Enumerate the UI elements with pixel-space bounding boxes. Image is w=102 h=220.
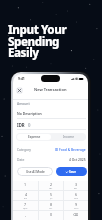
staticText: New Transaction	[34, 87, 67, 92]
staticText: 4 Oct 2025	[69, 157, 86, 161]
button[interactable]: Date	[17, 156, 86, 162]
staticText: 9	[75, 202, 78, 207]
staticText: 4	[25, 192, 28, 197]
button[interactable]: ⌫	[64, 211, 88, 220]
staticText: Income	[63, 135, 74, 139]
button[interactable]: 1	[13, 181, 38, 190]
staticText: Save	[69, 170, 77, 174]
staticText: Date	[17, 157, 25, 161]
button[interactable]: 7	[13, 201, 38, 210]
staticText: 9:41	[18, 76, 25, 81]
staticText: TUV	[49, 207, 53, 209]
staticText: Food & Beverage	[59, 147, 86, 151]
button[interactable]: 2	[39, 181, 63, 190]
staticText: 2	[50, 182, 53, 187]
staticText: DEF	[74, 187, 78, 189]
staticText: Category	[17, 147, 32, 151]
staticText: 7	[24, 202, 27, 207]
staticText: 5	[50, 192, 53, 197]
staticText: MNO	[74, 197, 79, 199]
staticText: ,	[25, 212, 26, 217]
button[interactable]: 5	[39, 191, 63, 200]
button[interactable]: Close	[16, 87, 23, 94]
staticText: Input Your Spending Easily	[8, 22, 67, 60]
button[interactable]: Save	[56, 167, 87, 176]
button[interactable]: 8	[39, 201, 63, 210]
staticText: ⌫	[73, 213, 79, 217]
button[interactable]: 9	[64, 201, 88, 210]
button[interactable]: Income	[51, 134, 85, 140]
staticText: Use AI Mode	[26, 170, 45, 174]
staticText: PQRS	[23, 207, 28, 209]
staticText: 0	[50, 212, 53, 217]
staticText: 1	[24, 182, 27, 187]
staticText: 8	[50, 202, 53, 207]
staticText: 6	[75, 192, 78, 197]
staticText: WXYZ	[74, 207, 79, 209]
staticText: Expense	[28, 135, 41, 139]
button[interactable]: 3	[64, 181, 88, 190]
staticText: ABC	[49, 187, 53, 189]
button[interactable]: Expense	[17, 134, 51, 140]
staticText: No Description	[17, 111, 42, 116]
button[interactable]: Category	[17, 146, 86, 152]
staticText: JKL	[50, 197, 53, 199]
staticText: 3	[75, 182, 78, 187]
staticText: 0	[28, 122, 31, 128]
button[interactable]: Use AI Mode	[17, 167, 53, 176]
staticText: IDR	[17, 122, 25, 128]
button[interactable]: 4	[13, 191, 38, 200]
staticText: GHI	[24, 197, 28, 199]
button[interactable]: 0	[39, 211, 63, 220]
staticText: Amount	[17, 101, 30, 105]
button[interactable]: 6	[64, 191, 88, 200]
